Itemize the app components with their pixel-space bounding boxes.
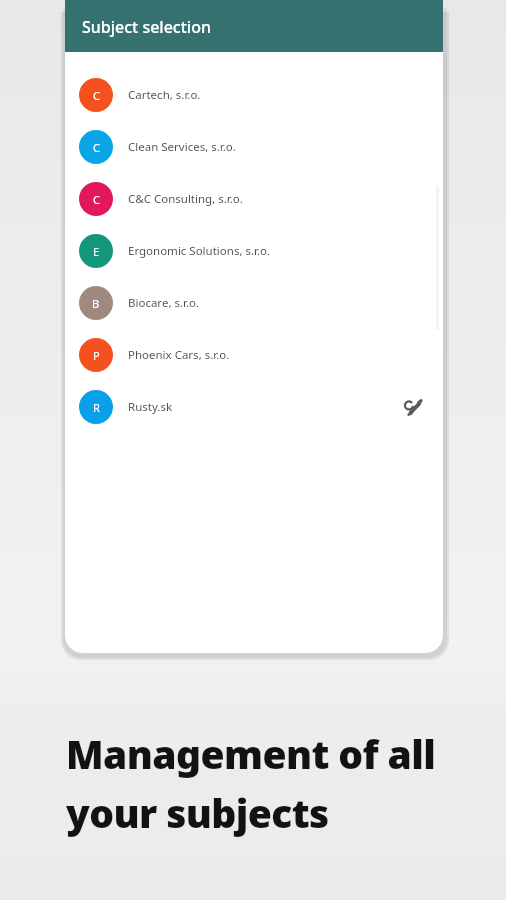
button[interactable]: R: [65, 381, 443, 433]
staticText: Subject selection: [82, 16, 211, 38]
button[interactable]: C: [65, 69, 443, 121]
button[interactable]: C: [65, 121, 443, 173]
button[interactable]: P: [65, 329, 443, 381]
staticText: C: [93, 88, 100, 103]
staticText: Phoenix Cars, s.r.o.: [128, 347, 230, 363]
staticText: Management of all: [66, 727, 436, 780]
staticText: C: [93, 192, 100, 207]
staticText: your subjects: [66, 786, 329, 839]
staticText: B: [92, 296, 100, 311]
staticText: Cartech, s.r.o.: [128, 87, 201, 103]
button[interactable]: B: [65, 277, 443, 329]
staticText: P: [93, 348, 100, 363]
button[interactable]: C: [65, 173, 443, 225]
button[interactable]: Edit subject: [395, 389, 431, 425]
staticText: Biocare, s.r.o.: [128, 295, 200, 311]
staticText: E: [93, 244, 100, 259]
staticText: Ergonomic Solutions, s.r.o.: [128, 243, 271, 259]
staticText: Rusty.sk: [128, 399, 173, 415]
staticText: Clean Services, s.r.o.: [128, 139, 236, 155]
staticText: C&C Consulting, s.r.o.: [128, 191, 243, 207]
staticText: R: [93, 400, 100, 415]
button[interactable]: E: [65, 225, 443, 277]
staticText: C: [93, 140, 100, 155]
